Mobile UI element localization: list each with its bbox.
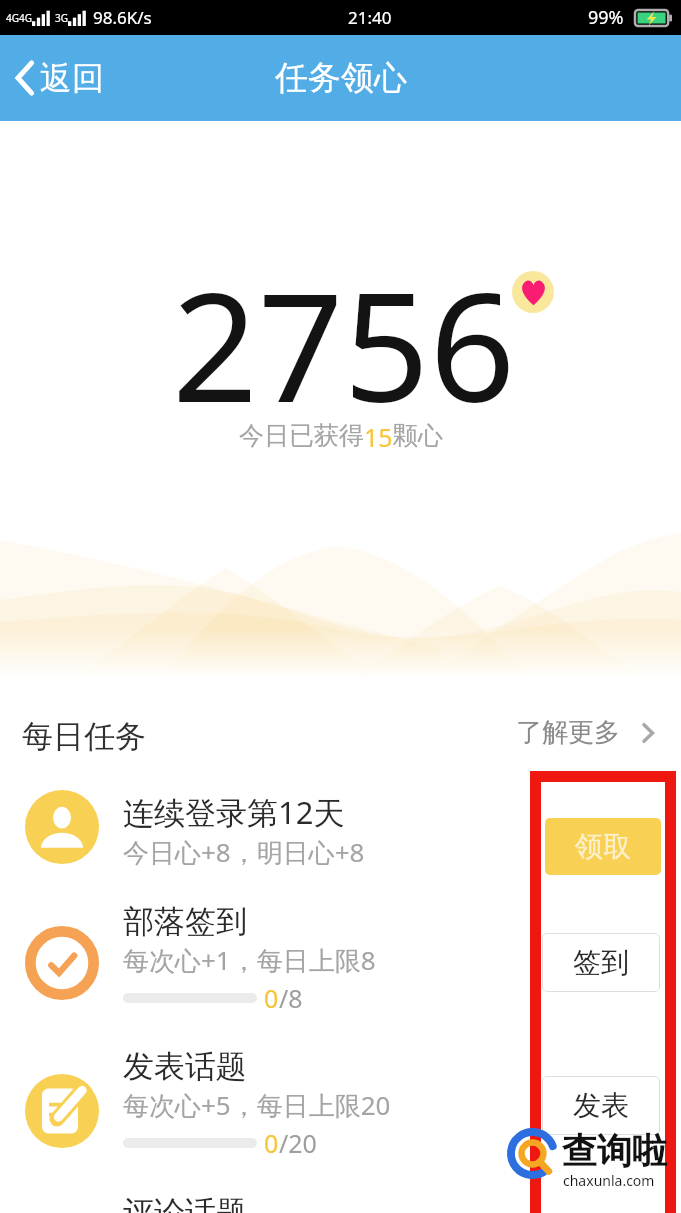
staticText: 每次心+5，每日上限20 (123, 1087, 391, 1123)
staticText: 评论话题 (123, 1193, 247, 1213)
button[interactable]: 部落签到 (14, 916, 530, 1036)
staticText: 部落签到 (123, 902, 247, 941)
staticText: /8 (279, 981, 303, 1015)
staticText: 发表 (573, 1088, 629, 1123)
staticText: 0 (264, 981, 279, 1015)
button[interactable]: 领取 (545, 818, 661, 875)
staticText: 98.6K/s (93, 6, 152, 29)
staticText: 2756 (172, 242, 516, 446)
button[interactable]: 发表话题 (14, 1064, 530, 1184)
staticText: 今日心+8，明日心+8 (123, 834, 365, 870)
staticText: 4G (6, 11, 19, 25)
staticText: 签到 (573, 945, 629, 980)
button[interactable]: Back (0, 48, 120, 108)
staticText: 每日任务 (22, 717, 146, 756)
other: Back (14, 60, 36, 96)
staticText: 领取 (575, 829, 631, 864)
button[interactable]: 发表 (542, 1076, 660, 1135)
staticText: 15 (364, 420, 393, 454)
staticText: 返回 (40, 58, 104, 98)
staticText: 任务领心 (275, 57, 407, 99)
staticText: 每次心+1，每日上限8 (123, 942, 376, 978)
button[interactable]: 签到 (542, 933, 660, 992)
button[interactable]: 连续登录第12天 (14, 780, 530, 874)
staticText: 了解更多 (516, 716, 620, 749)
staticText: 连续登录第12天 (123, 791, 345, 833)
staticText: /20 (279, 1126, 317, 1160)
staticText: 颗心 (393, 420, 443, 451)
staticText: 21:40 (348, 6, 392, 29)
staticText: 查询啦 (562, 1129, 667, 1173)
button[interactable]: 了解更多 (516, 716, 656, 749)
staticText: 4G (19, 11, 32, 25)
staticText: 3G (55, 11, 68, 25)
staticText: 99% (588, 5, 624, 30)
staticText: 0 (264, 1126, 279, 1160)
staticText: 今日已获得 (239, 420, 364, 451)
staticText: chaxunla.com (563, 1171, 655, 1190)
staticText: 发表话题 (123, 1047, 247, 1086)
